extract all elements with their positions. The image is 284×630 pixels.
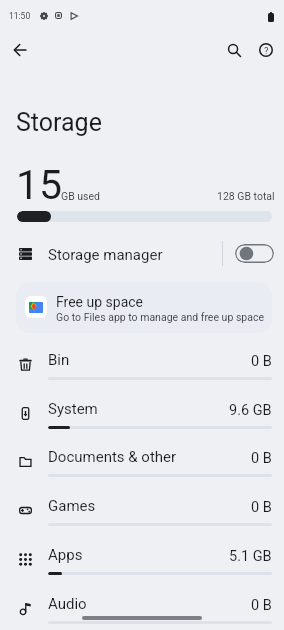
- button[interactable]: Storage manager toggle: [235, 244, 274, 263]
- staticText: Games: [48, 497, 96, 515]
- staticText: Bin: [48, 351, 70, 369]
- staticText: Storage manager: [48, 246, 163, 264]
- button[interactable]: System: [0, 384, 284, 433]
- staticText: Storage: [16, 108, 102, 137]
- staticText: 5.1 GB: [229, 548, 272, 565]
- staticText: Apps: [48, 546, 83, 564]
- button[interactable]: Bin: [0, 335, 284, 384]
- button[interactable]: Search: [216, 32, 252, 68]
- staticText: 9.6 GB: [229, 402, 272, 419]
- staticText: 0 B: [251, 353, 272, 370]
- staticText: GB used: [61, 190, 100, 202]
- button[interactable]: Documents & other: [0, 432, 284, 481]
- button[interactable]: Storage manager: [0, 230, 284, 277]
- staticText: 128 GB total: [217, 190, 275, 202]
- staticText: System: [48, 400, 98, 418]
- staticText: 11:50: [9, 11, 31, 21]
- staticText: 0 B: [251, 499, 272, 516]
- staticText: 15: [16, 161, 63, 209]
- button[interactable]: Back: [2, 32, 38, 68]
- staticText: Go to Files app to manage and free up sp…: [56, 311, 264, 323]
- button[interactable]: Free up space: [16, 282, 272, 333]
- staticText: Free up space: [56, 294, 144, 310]
- staticText: 0 B: [251, 450, 272, 467]
- staticText: ?: [264, 45, 269, 56]
- staticText: Documents & other: [48, 448, 177, 466]
- button[interactable]: Help: [248, 32, 284, 68]
- staticText: Audio: [48, 595, 87, 613]
- staticText: 0 B: [251, 597, 272, 614]
- button[interactable]: Audio: [0, 579, 284, 628]
- button[interactable]: Apps: [0, 530, 284, 579]
- button[interactable]: Games: [0, 481, 284, 530]
